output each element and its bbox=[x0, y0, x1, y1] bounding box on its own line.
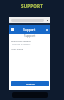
staticText: Choose a subject bbox=[12, 43, 31, 46]
button[interactable]: SUBMIT bbox=[11, 81, 49, 86]
staticText: Support bbox=[24, 34, 36, 38]
staticText: Select the subject bbox=[11, 39, 31, 42]
staticText: SUPPORT bbox=[21, 3, 43, 9]
staticText: Your name bbox=[11, 47, 24, 50]
staticText: Support bbox=[23, 28, 36, 32]
staticText: SUBMIT bbox=[26, 82, 35, 85]
